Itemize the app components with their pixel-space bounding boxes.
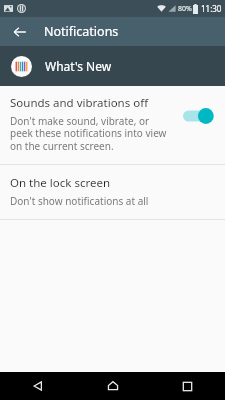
button[interactable]: Recent apps	[150, 372, 225, 400]
staticText: Notifications	[44, 23, 119, 40]
staticText: What's New	[45, 58, 112, 74]
button[interactable]: What's New	[0, 46, 225, 86]
button[interactable]: Sounds and vibrations off	[0, 86, 225, 164]
staticText: Don't show notifications at all	[10, 194, 149, 208]
button[interactable]: On the lock screen	[0, 165, 225, 219]
staticText: Sounds and vibrations off	[10, 95, 149, 111]
staticText: 80%	[178, 4, 192, 14]
button[interactable]: Sounds and vibrations toggle	[183, 107, 217, 125]
button[interactable]: Home	[75, 372, 150, 400]
staticText: On the lock screen	[10, 175, 111, 191]
button[interactable]: Back	[0, 372, 75, 400]
button[interactable]: Back	[8, 20, 32, 44]
staticText: Don't make sound, vibrate, or peek these…	[10, 114, 167, 153]
staticText: 11:30	[201, 3, 222, 14]
